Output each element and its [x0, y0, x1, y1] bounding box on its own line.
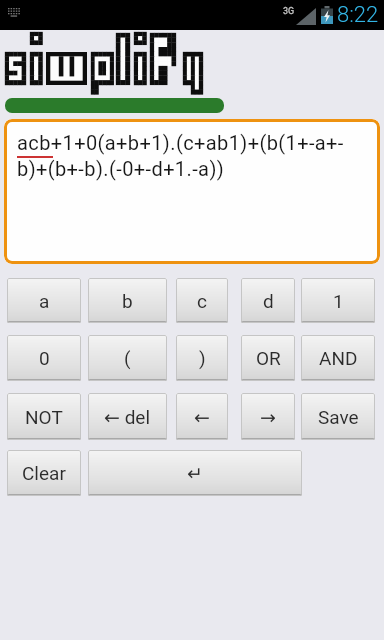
button[interactable]: NOT	[7, 393, 81, 440]
staticText: Save	[318, 406, 359, 428]
staticText: Clear	[22, 462, 66, 484]
button[interactable]: acb+1+0(a+b+1).(c+ab1)+(b(1+-a+- b)+(b+-…	[4, 119, 380, 264]
button[interactable]: d	[241, 278, 295, 323]
staticText: ← del	[104, 406, 151, 428]
button[interactable]: b	[88, 278, 167, 323]
staticText: (	[124, 347, 131, 369]
staticText: →	[260, 406, 276, 428]
staticText: ←	[194, 406, 210, 428]
staticText: )	[199, 347, 206, 369]
button[interactable]: a	[7, 278, 81, 323]
button[interactable]: ←	[176, 393, 228, 440]
button[interactable]: ↵	[88, 450, 302, 496]
staticText: NOT	[25, 406, 63, 428]
button[interactable]: AND	[301, 335, 375, 381]
staticText: c	[197, 290, 207, 312]
staticText: a	[39, 290, 50, 312]
staticText: 3G	[283, 6, 295, 17]
staticText: ↵	[187, 462, 203, 484]
button[interactable]: →	[241, 393, 295, 440]
staticText: OR	[256, 347, 281, 369]
button[interactable]: OR	[241, 335, 295, 381]
staticText: 8:22	[337, 2, 379, 28]
staticText: b	[122, 290, 133, 312]
button[interactable]: 1	[301, 278, 375, 323]
staticText: 0	[39, 347, 50, 369]
button[interactable]: Clear	[7, 450, 81, 496]
button[interactable]: 0	[7, 335, 81, 381]
button[interactable]: ← del	[88, 393, 167, 440]
staticText: AND	[319, 347, 358, 369]
staticText: d	[263, 290, 274, 312]
staticText: acb+1+0(a+b+1).(c+ab1)+(b(1+-a+- b)+(b+-…	[17, 131, 344, 181]
staticText: 1	[333, 290, 344, 312]
button[interactable]: c	[176, 278, 228, 323]
button[interactable]: Save	[301, 393, 375, 440]
button[interactable]: )	[176, 335, 228, 381]
button[interactable]: (	[88, 335, 167, 381]
